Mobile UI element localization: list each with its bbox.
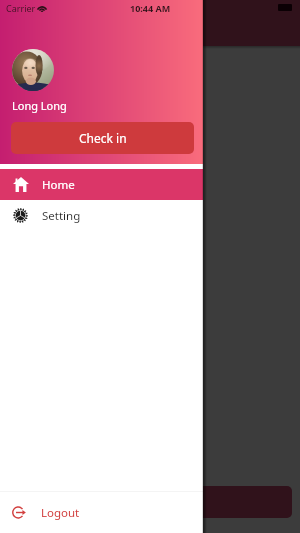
staticText: Home [42, 177, 75, 193]
staticText: Setting [42, 208, 81, 224]
staticText: Check in [79, 130, 127, 146]
button[interactable]: Setting [0, 200, 203, 231]
staticText: Carrier [6, 2, 36, 14]
button[interactable]: Home [0, 169, 203, 200]
staticText: Logout [41, 505, 80, 521]
button[interactable]: Logout [0, 492, 203, 533]
staticText: 10:44 AM [130, 2, 171, 14]
button[interactable]: Profile photo [12, 49, 54, 91]
button[interactable]: Check in [11, 122, 194, 154]
staticText: Long Long [12, 98, 67, 113]
other: Wi-Fi signal [37, 4, 47, 12]
